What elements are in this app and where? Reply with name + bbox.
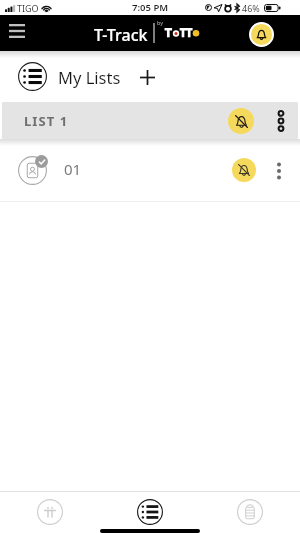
- button[interactable]: Add list: [134, 64, 160, 90]
- staticText: LIST 1: [24, 112, 69, 130]
- staticText: by: [157, 19, 164, 26]
- staticText: TIGO: [17, 2, 39, 14]
- button[interactable]: Lists: [137, 499, 163, 525]
- button[interactable]: List options: [268, 108, 293, 133]
- button[interactable]: 01: [0, 139, 300, 201]
- button[interactable]: My Lists: [18, 62, 47, 91]
- button[interactable]: Notifications: [251, 24, 272, 45]
- button[interactable]: LIST 1: [2, 102, 298, 139]
- button[interactable]: Menu: [1, 15, 33, 47]
- button[interactable]: Mute item: [232, 158, 256, 182]
- staticText: 7:05 PM: [132, 1, 169, 14]
- button[interactable]: Shipments: [37, 499, 63, 525]
- staticText: My Lists: [58, 66, 121, 88]
- staticText: T-Track: [94, 24, 148, 46]
- button[interactable]: Item options: [266, 158, 291, 183]
- button[interactable]: Archive: [237, 499, 263, 525]
- staticText: 01: [64, 159, 82, 179]
- button[interactable]: Mute list: [228, 108, 254, 134]
- staticText: 46%: [242, 2, 260, 14]
